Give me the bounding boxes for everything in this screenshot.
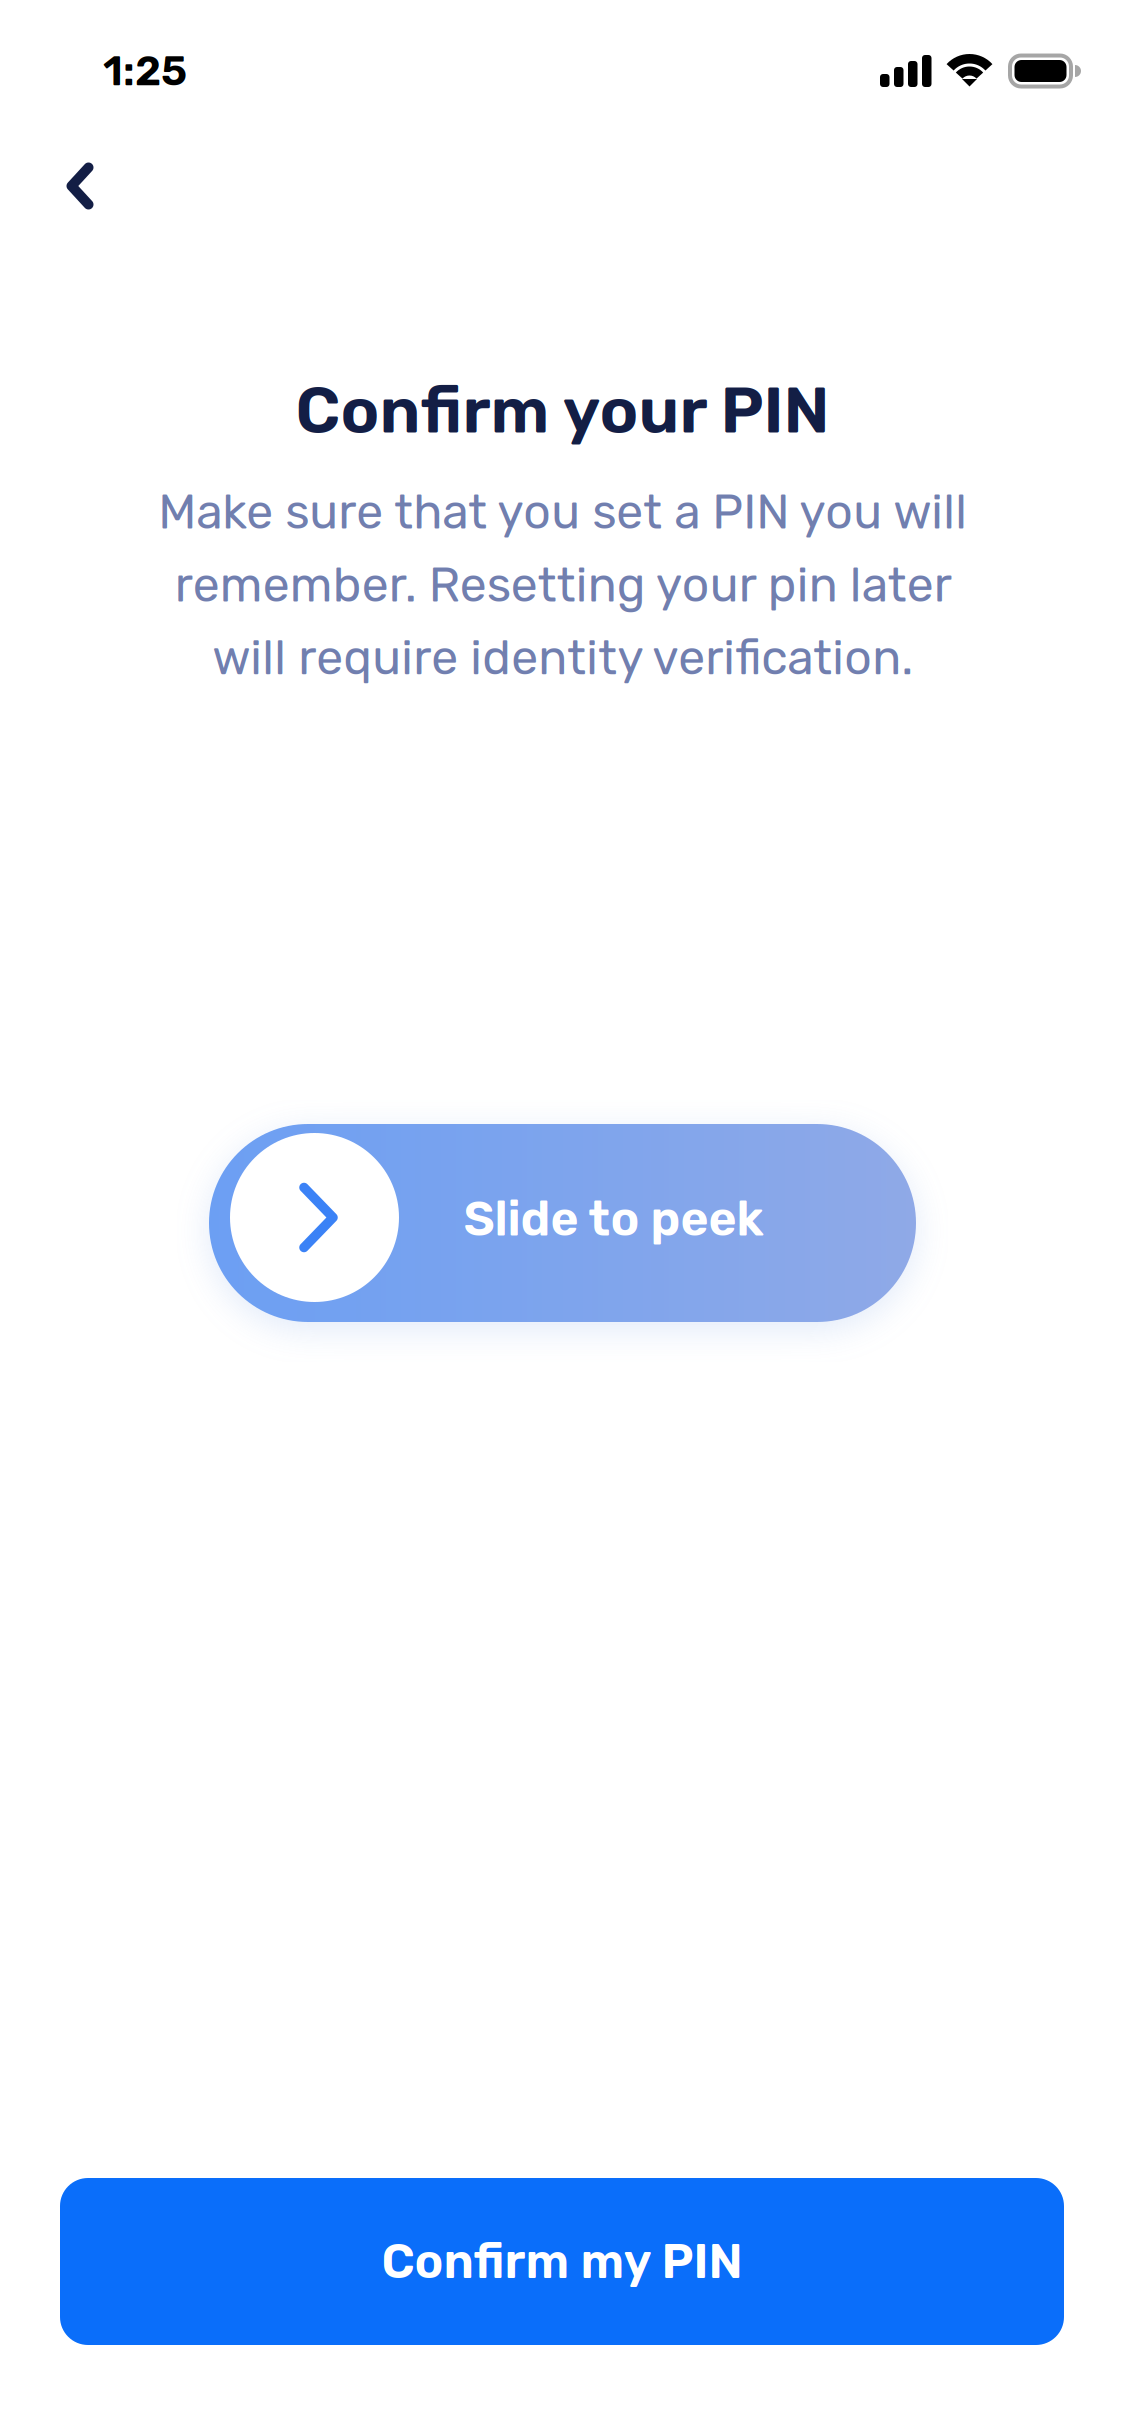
staticText: 1:25 bbox=[103, 46, 187, 95]
staticText: Slide to peek bbox=[463, 1191, 763, 1247]
button[interactable]: Confirm my PIN bbox=[60, 2178, 1064, 2345]
button[interactable]: Slide to peek bbox=[209, 1124, 916, 1322]
staticText: Confirm my PIN bbox=[381, 2233, 742, 2290]
button[interactable]: Back bbox=[0, 126, 144, 246]
staticText: Make sure that you set a PIN you will re… bbox=[158, 484, 967, 686]
staticText: Confirm your PIN bbox=[295, 372, 829, 449]
